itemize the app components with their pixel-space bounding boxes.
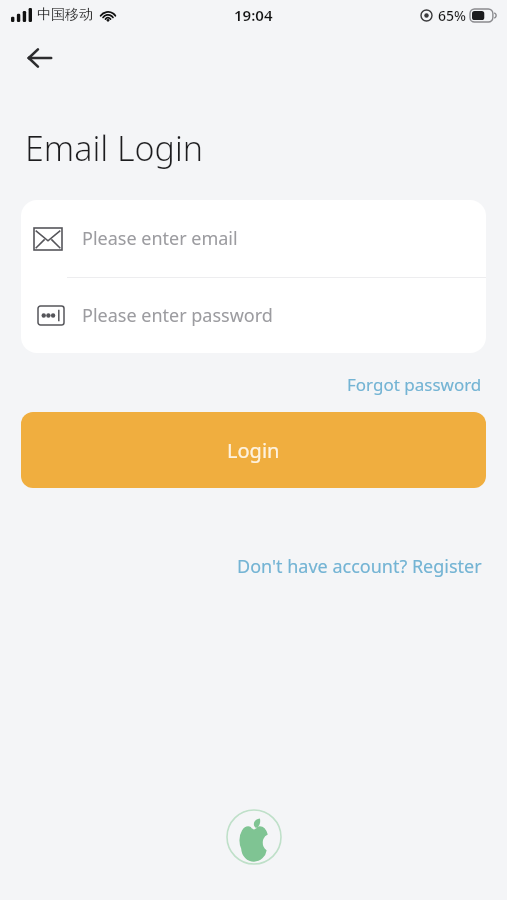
staticText: 19:04 [234,5,273,25]
staticText: Please enter password [82,303,273,328]
staticText: Please enter email [82,226,238,251]
button[interactable]: Please enter password [21,278,486,353]
staticText: Email Login [25,125,204,171]
button[interactable]: Don't have account? Register [235,551,484,582]
button[interactable]: Sign in with Apple [226,809,282,865]
button[interactable]: Please enter email [21,200,486,277]
staticText: Login [227,437,280,464]
staticText: 65% [438,6,466,25]
button[interactable]: Login [21,412,486,488]
button[interactable]: Back [16,34,64,82]
button[interactable]: Forgot password [345,370,484,399]
staticText: 中国移动 [37,6,93,24]
